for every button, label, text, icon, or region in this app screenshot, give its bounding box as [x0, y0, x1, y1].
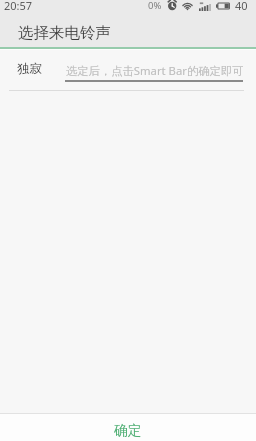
other: Battery	[216, 2, 230, 11]
staticText: 选定后，点击Smart Bar的确定即可	[66, 63, 244, 78]
staticText: 0%	[148, 0, 162, 12]
button[interactable]: 确定	[0, 414, 256, 441]
staticText: 40	[235, 0, 248, 13]
button[interactable]: 独寂	[0, 52, 256, 90]
staticText: 选择来电铃声	[18, 23, 111, 43]
staticText: 独寂	[17, 61, 43, 77]
staticText: 20:57	[4, 0, 33, 13]
other: Wi-Fi	[182, 1, 193, 11]
other: Alarm set	[167, 0, 178, 11]
staticText: 确定	[114, 422, 142, 439]
other: Mobile signal	[199, 4, 211, 14]
